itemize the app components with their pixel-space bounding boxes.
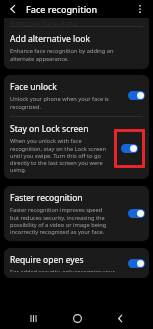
button[interactable]: Home <box>66 308 88 329</box>
button[interactable]: Toggle <box>128 209 145 218</box>
button[interactable]: Toggle <box>121 144 138 153</box>
staticText: Faster recognition improves speed but re… <box>10 206 107 235</box>
button[interactable]: Stay on Lock screen <box>4 117 149 179</box>
staticText: Face recognition <box>26 3 98 15</box>
staticText: Faster recognition <box>10 192 83 204</box>
staticText: Face unlock <box>10 81 57 93</box>
staticText: Stay on Lock screen <box>10 123 89 135</box>
staticText: Enhance face recognition by adding an al… <box>10 47 114 62</box>
staticText: Unlock your phone when your face is reco… <box>10 95 109 110</box>
button[interactable]: More options <box>131 0 149 18</box>
staticText: Add alternative look <box>10 33 91 45</box>
button[interactable]: Require open eyes <box>4 248 149 278</box>
button[interactable]: Toggle <box>128 91 145 100</box>
button[interactable]: Recents <box>22 308 44 329</box>
button[interactable]: Back <box>4 0 22 18</box>
staticText: Remove face data <box>10 18 77 26</box>
button[interactable]: Remove face data <box>4 18 149 26</box>
button[interactable]: Faster recognition <box>4 186 149 241</box>
button[interactable]: Add alternative look <box>4 27 149 69</box>
staticText: When you unlock with face recognition, s… <box>10 137 106 173</box>
button[interactable]: Back <box>109 308 131 329</box>
button[interactable]: Toggle <box>128 259 145 268</box>
staticText: For added security, only recognize your … <box>10 268 115 272</box>
button[interactable]: Face unlock <box>4 75 149 116</box>
staticText: Require open eyes <box>10 254 84 266</box>
